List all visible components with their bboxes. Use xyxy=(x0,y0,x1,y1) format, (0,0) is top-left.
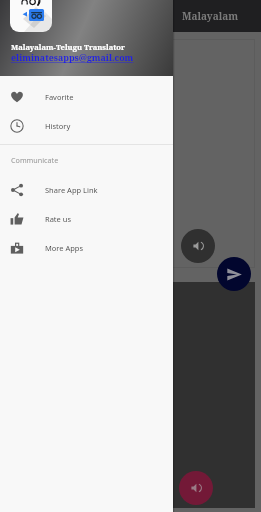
button[interactable]: Translate xyxy=(217,257,251,291)
button[interactable]: History xyxy=(0,111,173,140)
button[interactable]: Speak input xyxy=(181,229,215,263)
button[interactable]: More Apps xyxy=(0,233,173,262)
staticText: Malayalam-Telugu Translator xyxy=(11,42,125,52)
button[interactable]: Share App Link xyxy=(0,175,173,204)
staticText: Favorite xyxy=(45,92,74,102)
staticText: Communicate xyxy=(11,155,59,165)
button[interactable]: Favorite xyxy=(0,82,173,111)
staticText: Share App Link xyxy=(45,185,98,195)
staticText: Rate us xyxy=(45,214,71,224)
staticText: More Apps xyxy=(45,243,84,253)
staticText: History xyxy=(45,121,71,131)
staticText: Malayalam xyxy=(182,9,239,23)
staticText: eliminatesapps@gmail.com xyxy=(11,52,134,64)
button[interactable]: Rate us xyxy=(0,204,173,233)
button[interactable]: Speak output xyxy=(179,471,213,505)
